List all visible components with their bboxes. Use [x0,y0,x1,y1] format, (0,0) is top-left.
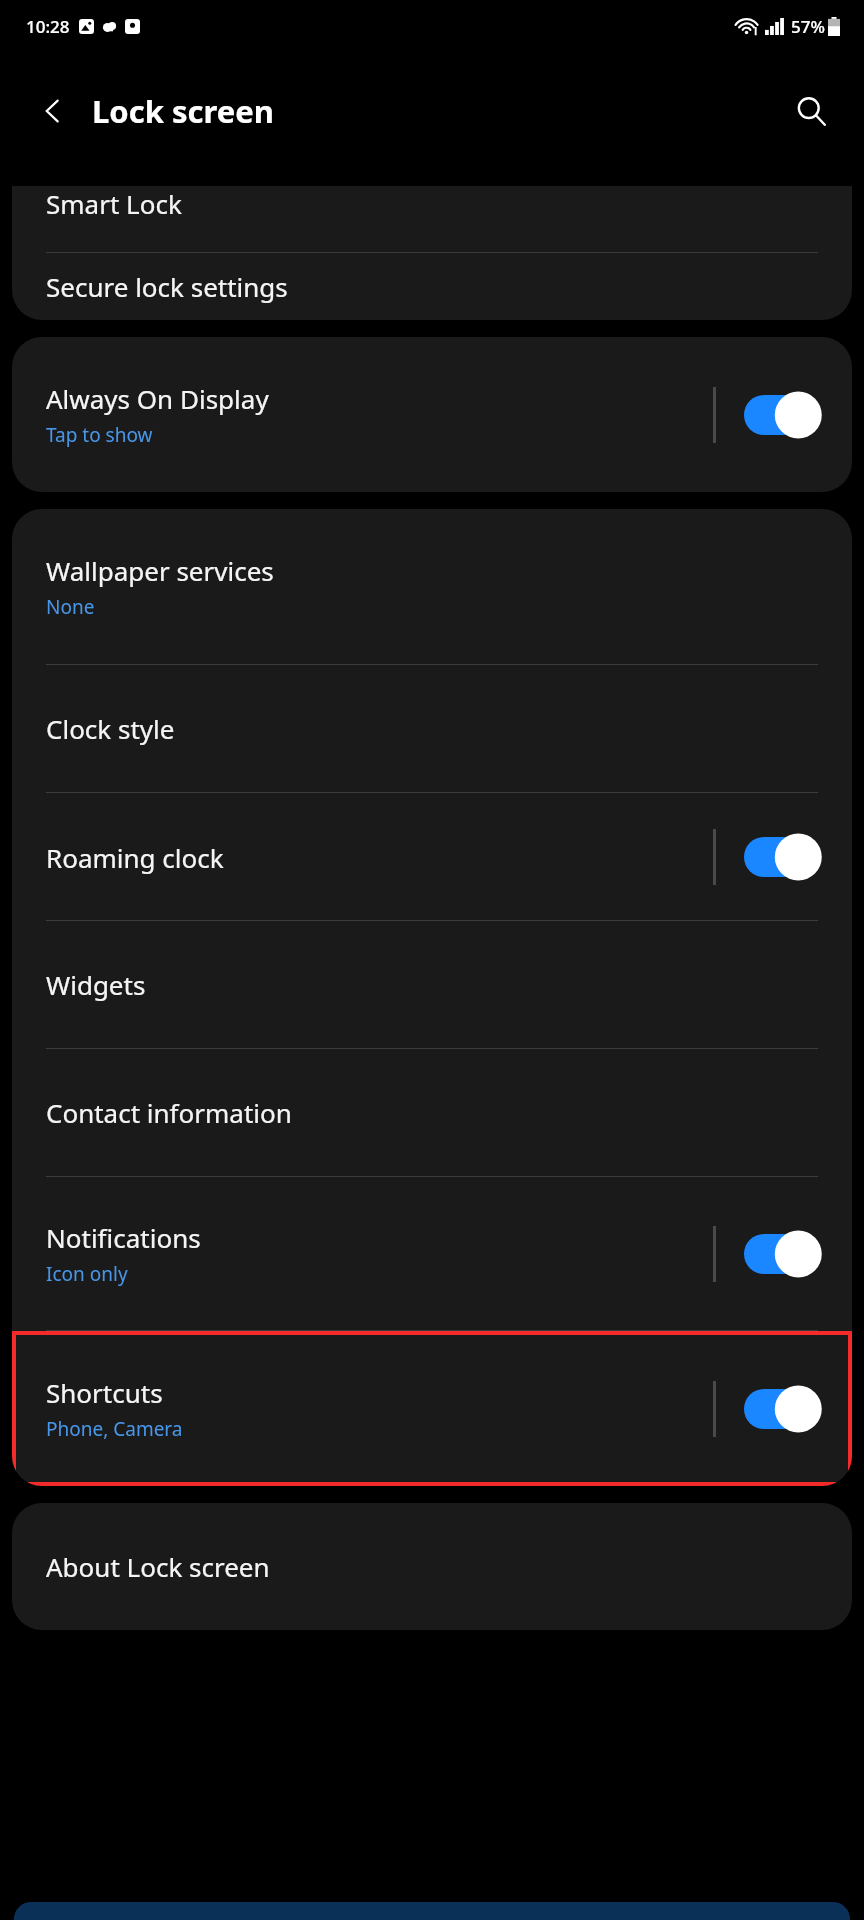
staticText: Lock screen [92,90,274,132]
button[interactable]: Toggle [744,1229,828,1279]
staticText: About Lock screen [46,1549,270,1584]
button[interactable]: Toggle [744,390,828,440]
button[interactable]: Smart Lock [12,186,852,252]
staticText: Secure lock settings [46,269,288,304]
staticText: Widgets [46,967,146,1002]
staticText: Tap to show [46,422,153,448]
staticText: Roaming clock [46,840,224,875]
button[interactable]: About Lock screen [12,1503,852,1630]
button[interactable]: Wallpaper services [12,509,852,664]
staticText: Icon only [46,1261,128,1287]
button[interactable]: Toggle [744,1384,828,1434]
button[interactable]: Always On Display [12,337,852,492]
staticText: None [46,594,95,620]
button[interactable]: Search [784,84,838,138]
button[interactable]: Notifications [12,1177,852,1330]
staticText: 10:28 [26,15,70,38]
staticText: Always On Display [46,381,269,416]
staticText: 57% [791,15,825,38]
button[interactable]: Toggle [744,832,828,882]
button[interactable]: Widgets [12,921,852,1048]
staticText: Notifications [46,1220,201,1255]
button[interactable]: Contact information [12,1049,852,1176]
button[interactable]: Shortcuts [12,1331,852,1486]
staticText: Wallpaper services [46,553,274,588]
staticText: Shortcuts [46,1375,163,1410]
staticText: Clock style [46,711,175,746]
button[interactable]: Roaming clock [12,793,852,920]
button[interactable]: Clock style [12,665,852,792]
button[interactable]: Secure lock settings [12,253,852,320]
staticText: Smart Lock [46,186,182,221]
staticText: Contact information [46,1095,292,1130]
staticText: Phone, Camera [46,1416,183,1442]
button[interactable]: Back [30,88,76,134]
